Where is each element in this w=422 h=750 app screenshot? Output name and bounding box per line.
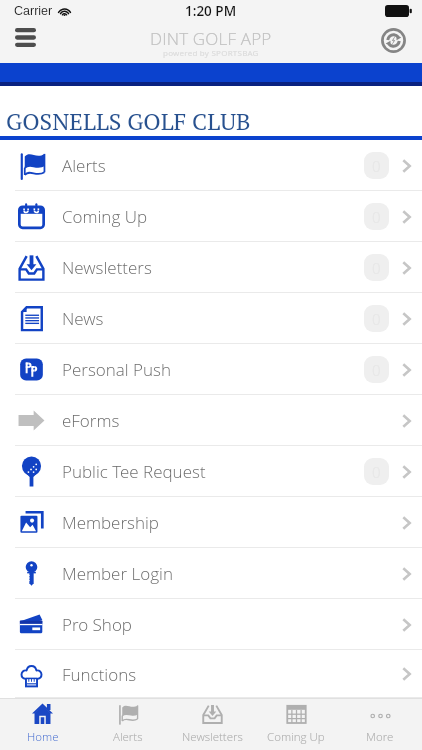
button[interactable]: Membership — [0, 497, 422, 548]
staticText: Home — [27, 729, 59, 745]
staticText: Coming Up — [62, 205, 148, 228]
staticText: More — [366, 729, 394, 745]
staticText: Alerts — [113, 729, 143, 745]
staticText: GOSNELLS GOLF CLUB — [6, 106, 251, 137]
button[interactable]: Alerts — [0, 140, 422, 191]
staticText: Personal Push — [62, 358, 171, 381]
button[interactable]: Alerts — [85, 699, 170, 750]
staticText: Newsletters — [182, 729, 243, 745]
staticText: Newsletters — [62, 256, 152, 279]
button[interactable]: Home — [0, 699, 85, 750]
button[interactable]: Coming Up — [254, 699, 338, 750]
button[interactable]: Newsletters — [0, 242, 422, 293]
button[interactable]: Personal Push — [0, 344, 422, 395]
staticText: powered by SPORTSBAG — [163, 47, 259, 58]
staticText: Functions — [62, 663, 137, 686]
button[interactable]: Menu — [6, 18, 45, 57]
button[interactable]: Newsletters — [170, 699, 254, 750]
staticText: Alerts — [62, 154, 106, 177]
button[interactable]: eForms — [0, 395, 422, 446]
button[interactable]: News — [0, 293, 422, 344]
button[interactable]: Public Tee Request — [0, 446, 422, 497]
button[interactable]: Functions — [0, 650, 422, 698]
button[interactable]: More — [338, 699, 422, 750]
staticText: eForms — [62, 409, 120, 432]
button[interactable]: Refresh — [374, 21, 412, 59]
staticText: DINT GOLF APP — [150, 27, 272, 50]
staticText: Carrier — [14, 4, 53, 18]
button[interactable]: Member Login — [0, 548, 422, 599]
staticText: News — [62, 307, 104, 330]
staticText: Coming Up — [267, 729, 325, 745]
staticText: Member Login — [62, 562, 173, 585]
staticText: 1:20 PM — [185, 2, 237, 20]
staticText: Pro Shop — [62, 613, 132, 636]
staticText: Public Tee Request — [62, 460, 206, 483]
staticText: Membership — [62, 511, 159, 534]
button[interactable]: Pro Shop — [0, 599, 422, 650]
button[interactable]: Coming Up — [0, 191, 422, 242]
